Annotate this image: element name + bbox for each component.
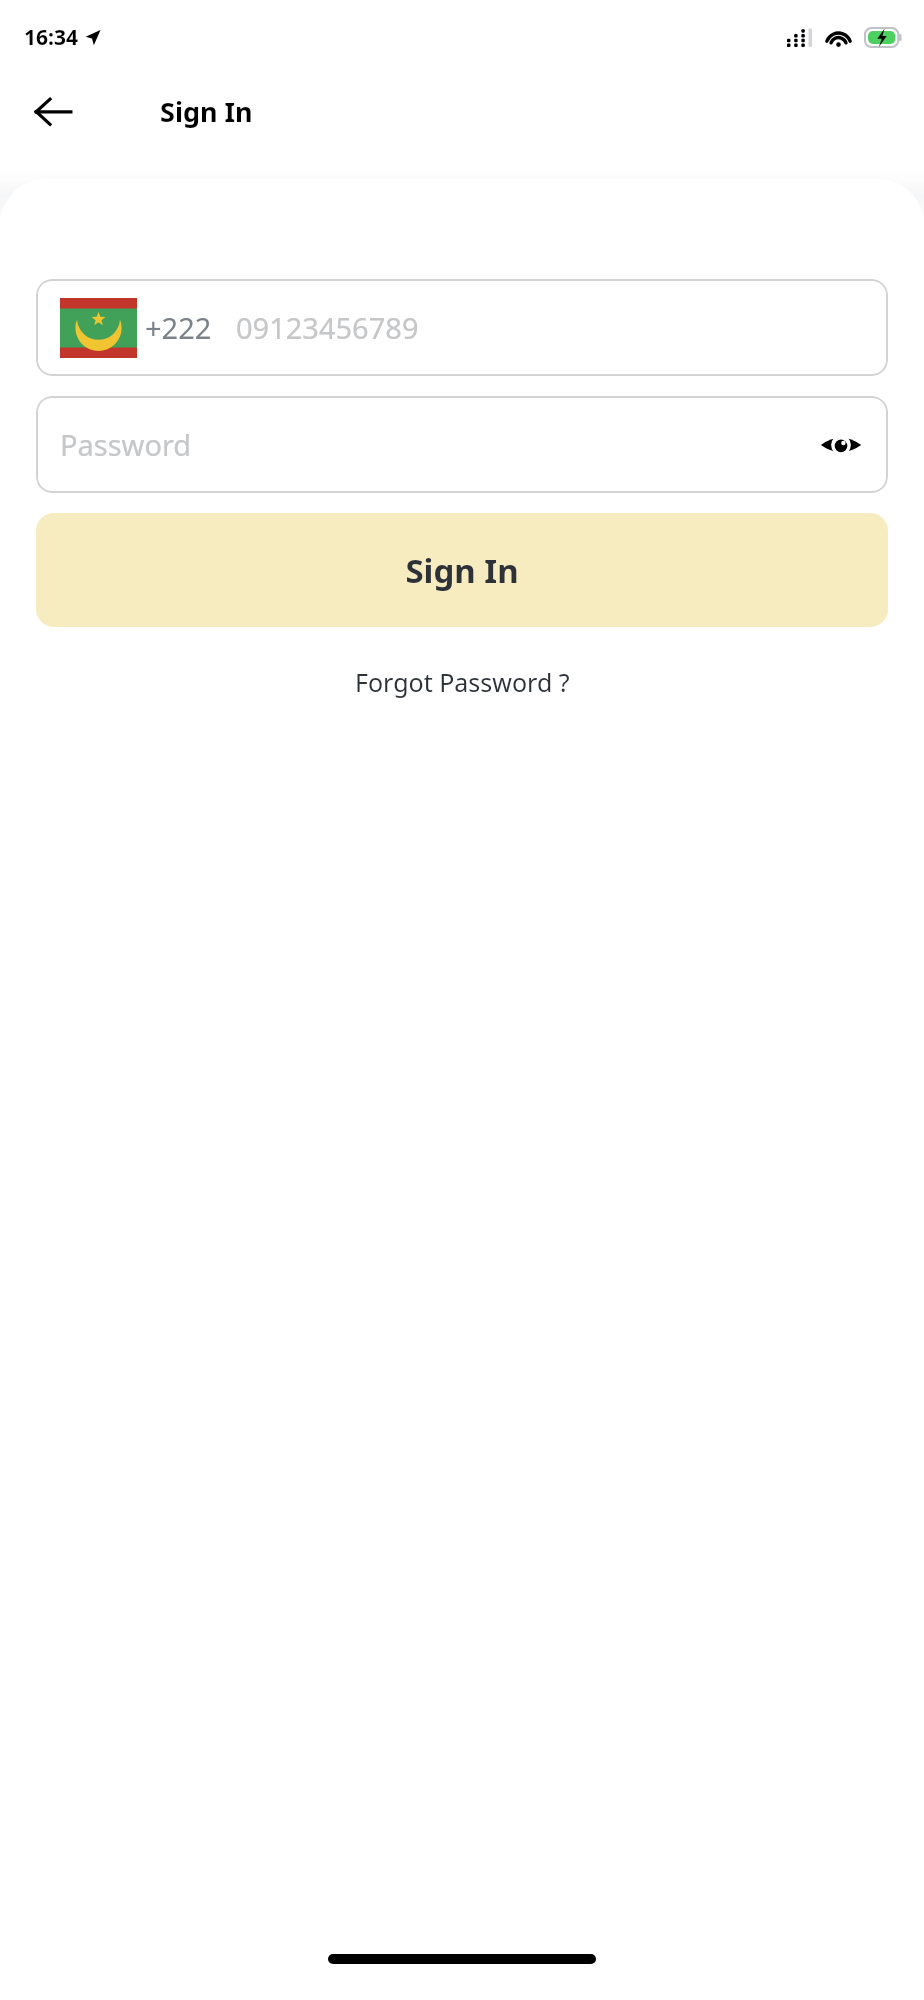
staticText: Sign In: [160, 93, 253, 130]
button[interactable]: Sign In: [36, 513, 888, 627]
button[interactable]: Show password: [812, 416, 870, 474]
staticText: 09123456789: [236, 308, 419, 347]
button[interactable]: +222: [36, 279, 888, 376]
staticText: +222: [145, 308, 212, 347]
button[interactable]: Password: [36, 396, 888, 493]
staticText: Sign In: [405, 548, 519, 593]
staticText: 16:34: [24, 23, 78, 52]
staticText: Password: [60, 425, 812, 464]
button[interactable]: Back: [26, 84, 80, 138]
button[interactable]: Forgot Password ?: [345, 659, 580, 705]
staticText: Forgot Password ?: [355, 665, 570, 699]
